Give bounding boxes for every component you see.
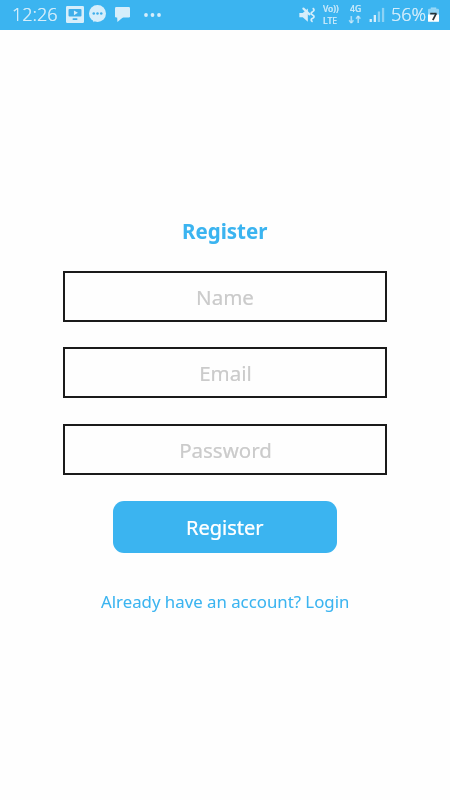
staticText: 12:26 (12, 2, 58, 27)
staticText: Email (199, 359, 252, 387)
staticText: Register (182, 217, 268, 245)
button[interactable]: Name input field (63, 271, 387, 322)
staticText: 4G (350, 3, 362, 15)
staticText: Name (196, 283, 254, 311)
button[interactable]: Register (113, 501, 337, 553)
button[interactable]: Already have an account? Login (101, 590, 350, 613)
staticText: 56% (391, 2, 427, 27)
button[interactable]: Email input field (63, 347, 387, 398)
staticText: Already have an account? Login (101, 590, 350, 613)
button[interactable]: Password input field (63, 424, 387, 475)
staticText: Vo)) (323, 3, 339, 15)
staticText: Password (179, 436, 272, 464)
staticText: Register (186, 514, 264, 541)
staticText: LTE (323, 15, 338, 27)
